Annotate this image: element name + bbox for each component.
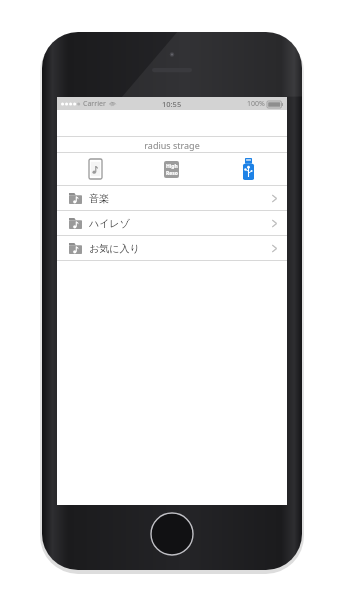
staticText: 100% <box>247 99 265 109</box>
button[interactable]: 音楽 <box>57 186 287 210</box>
button[interactable]: High resolution audio <box>133 153 210 185</box>
button[interactable]: USB storage <box>210 153 287 185</box>
staticText: High <box>166 163 178 170</box>
staticText: お気に入り <box>89 242 140 255</box>
button[interactable]: Device music <box>57 153 133 185</box>
button[interactable]: お気に入り <box>57 236 287 260</box>
button[interactable]: ハイレゾ <box>57 211 287 235</box>
staticText: ハイレゾ <box>89 217 130 230</box>
staticText: 音楽 <box>89 192 109 205</box>
staticText: Carrier <box>83 99 106 109</box>
staticText: 10:55 <box>162 99 182 109</box>
staticText: radius strage <box>144 139 200 151</box>
staticText: Reso <box>166 170 178 177</box>
